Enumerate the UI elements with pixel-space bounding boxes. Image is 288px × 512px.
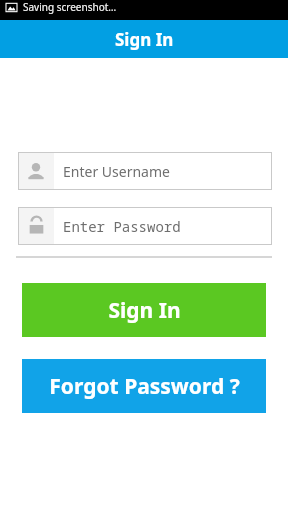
staticText: Forgot Password ? [49, 372, 240, 401]
button[interactable]: Username [18, 152, 272, 190]
button[interactable]: Sign In [22, 283, 266, 337]
staticText: Enter Username [63, 162, 170, 181]
staticText: Saving screenshot… [23, 0, 117, 14]
staticText: Sign In [115, 28, 174, 51]
button[interactable]: Password [18, 207, 272, 245]
staticText: Enter Password [63, 217, 181, 236]
button[interactable]: Forgot Password ? [22, 359, 266, 413]
staticText: Sign In [108, 296, 181, 325]
